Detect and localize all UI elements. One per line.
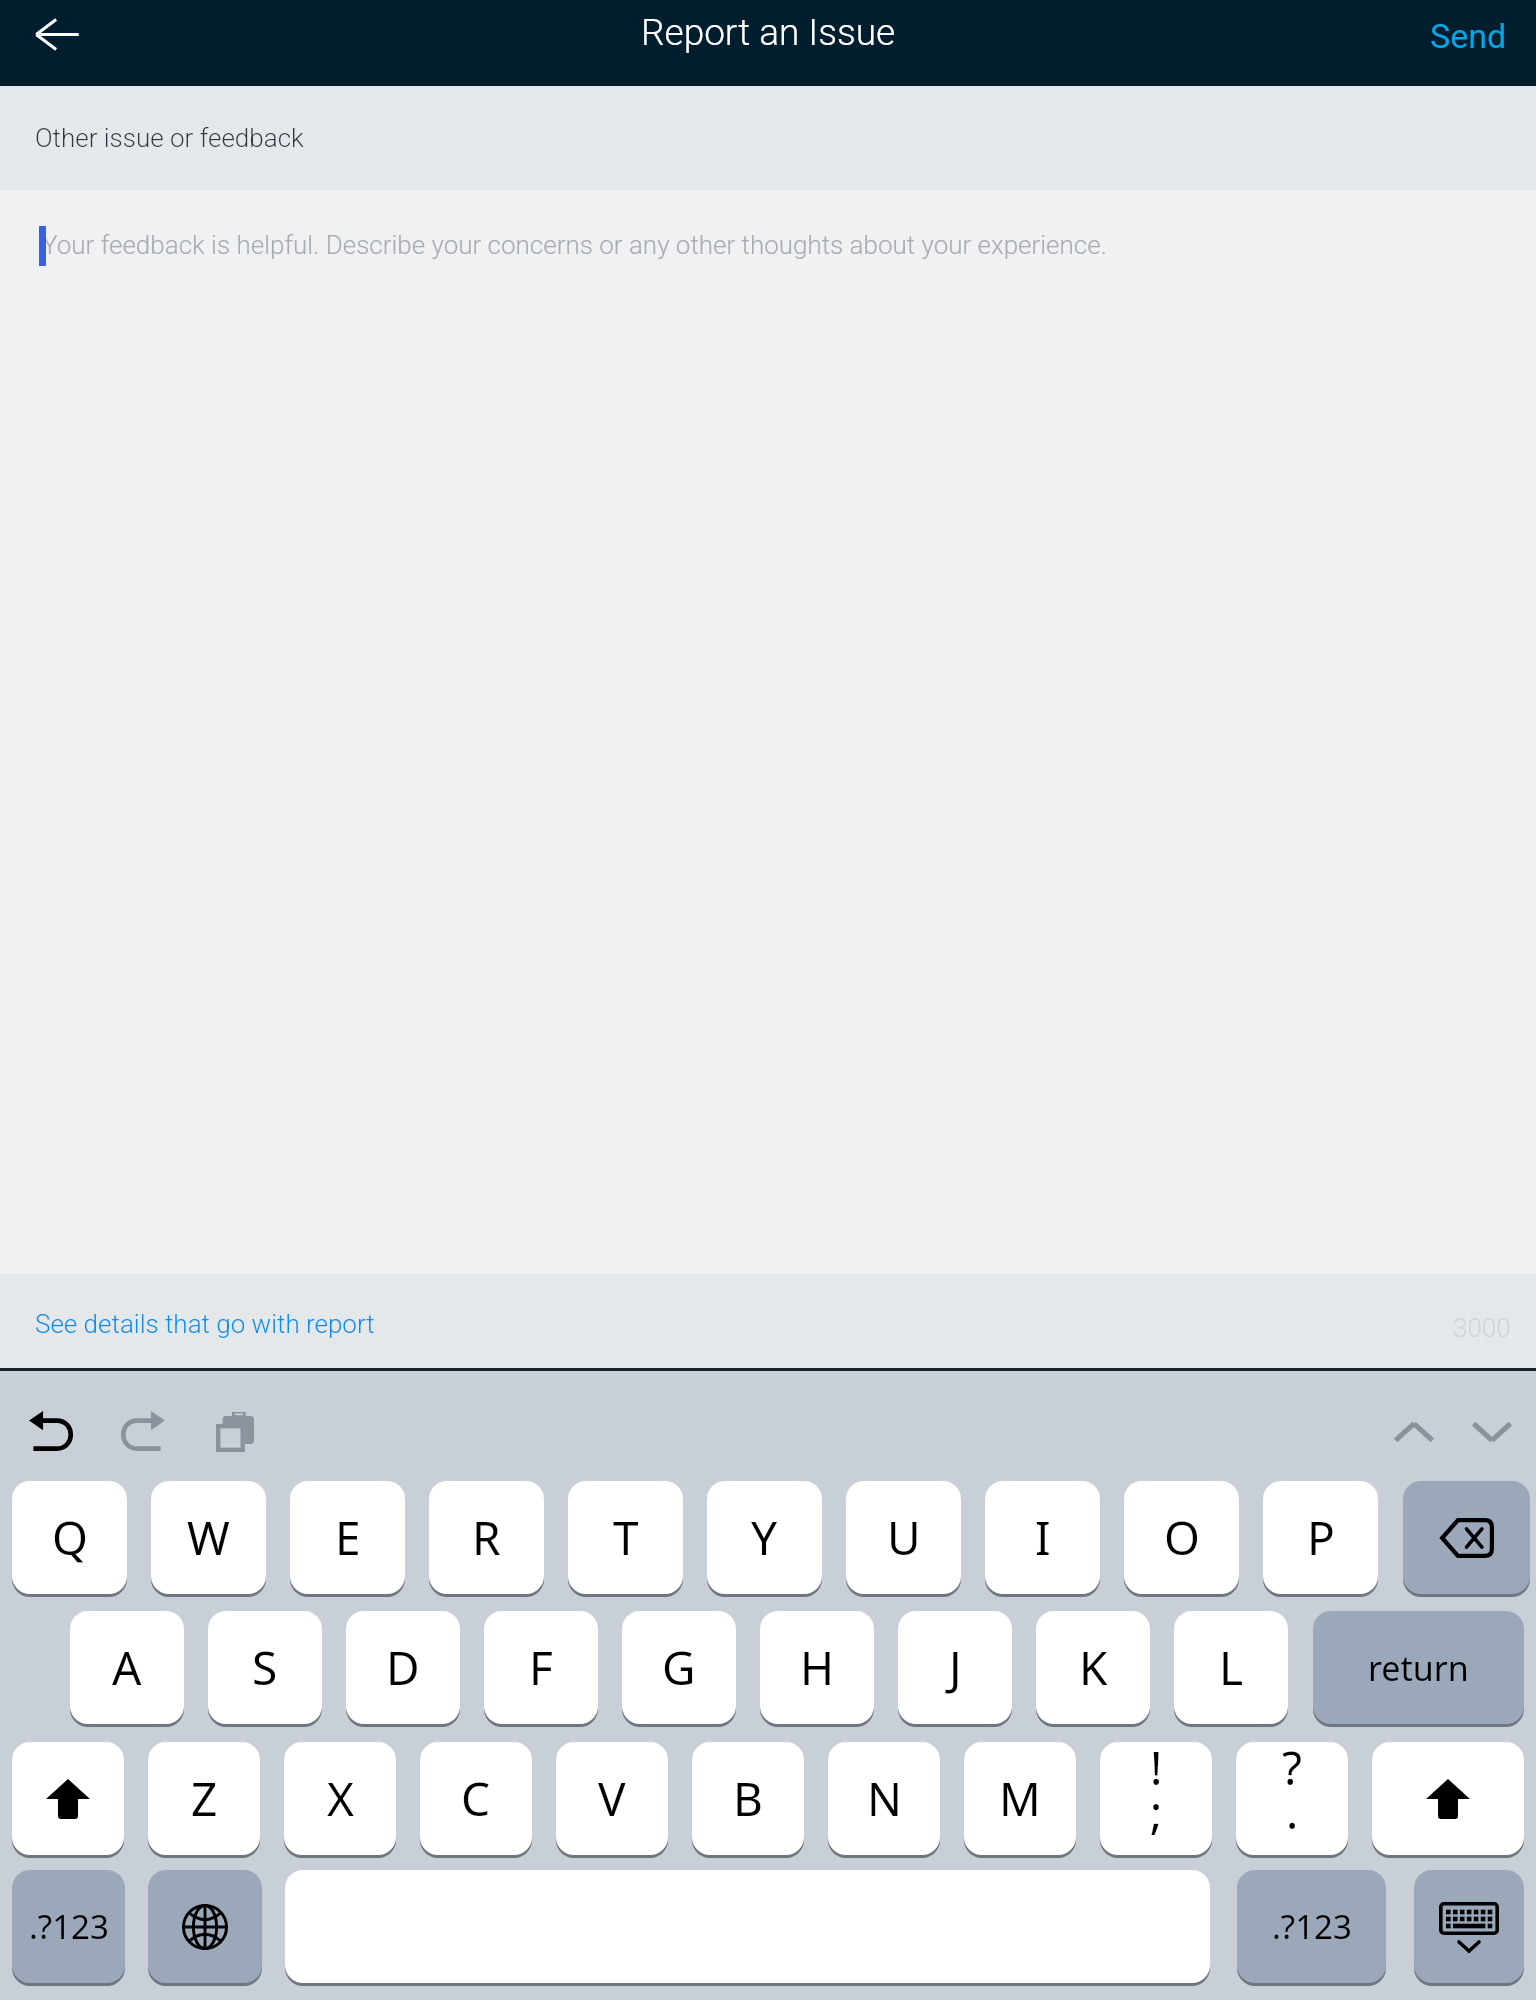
button[interactable]: H bbox=[760, 1611, 874, 1724]
button[interactable]: F bbox=[484, 1611, 598, 1724]
button[interactable]: E bbox=[290, 1481, 405, 1594]
staticText: N bbox=[867, 1767, 902, 1830]
button[interactable]: Undo bbox=[9, 1389, 93, 1473]
button[interactable]: G bbox=[622, 1611, 736, 1724]
button[interactable]: Change language bbox=[148, 1870, 262, 1983]
button[interactable]: K bbox=[1036, 1611, 1150, 1724]
button[interactable]: Redo bbox=[101, 1389, 185, 1473]
button[interactable]: Shift bbox=[1372, 1742, 1524, 1855]
staticText: W bbox=[187, 1506, 230, 1569]
button[interactable]: T bbox=[568, 1481, 683, 1594]
button[interactable]: C bbox=[420, 1742, 532, 1855]
button[interactable]: .?123 bbox=[1237, 1870, 1386, 1983]
staticText: 3000 bbox=[1453, 1313, 1511, 1343]
button[interactable]: return bbox=[1313, 1611, 1524, 1724]
button[interactable]: S bbox=[208, 1611, 322, 1724]
button[interactable]: M bbox=[964, 1742, 1076, 1855]
button[interactable]: A bbox=[70, 1611, 184, 1724]
button[interactable]: Space bbox=[285, 1870, 1210, 1983]
staticText: C bbox=[461, 1767, 491, 1830]
button[interactable]: Shift bbox=[12, 1742, 124, 1855]
button[interactable]: U bbox=[846, 1481, 961, 1594]
staticText: L bbox=[1219, 1636, 1244, 1699]
button[interactable]: ? bbox=[1236, 1742, 1348, 1855]
staticText: X bbox=[327, 1767, 354, 1830]
button[interactable]: Previous field bbox=[1372, 1390, 1456, 1474]
button[interactable]: See details that go with report bbox=[0, 1274, 395, 1368]
staticText: R bbox=[472, 1506, 501, 1569]
staticText: S bbox=[252, 1636, 278, 1699]
staticText: ? bbox=[1282, 1742, 1302, 1799]
staticText: P bbox=[1307, 1506, 1335, 1569]
staticText: O bbox=[1164, 1506, 1200, 1569]
staticText: K bbox=[1079, 1636, 1108, 1699]
button[interactable]: X bbox=[284, 1742, 396, 1855]
button[interactable]: V bbox=[556, 1742, 668, 1855]
staticText: Y bbox=[751, 1506, 778, 1569]
staticText: Other issue or feedback bbox=[35, 123, 304, 153]
staticText: . bbox=[1286, 1780, 1299, 1843]
button[interactable]: R bbox=[429, 1481, 544, 1594]
button[interactable]: Other issue or feedback bbox=[0, 86, 1536, 190]
staticText: E bbox=[335, 1506, 361, 1569]
button[interactable]: Send bbox=[1390, 3, 1536, 69]
staticText: T bbox=[613, 1506, 639, 1569]
button[interactable]: Q bbox=[12, 1481, 127, 1594]
button[interactable]: Hide keyboard bbox=[1414, 1870, 1524, 1983]
button[interactable]: P bbox=[1263, 1481, 1378, 1594]
button[interactable]: ! bbox=[1100, 1742, 1212, 1855]
staticText: F bbox=[529, 1636, 553, 1699]
staticText: G bbox=[662, 1636, 696, 1699]
staticText: I bbox=[1035, 1506, 1051, 1569]
button[interactable]: Describe your issue bbox=[0, 190, 1536, 1274]
button[interactable]: D bbox=[346, 1611, 460, 1724]
staticText: return bbox=[1368, 1645, 1469, 1691]
button[interactable]: Next field bbox=[1450, 1390, 1534, 1474]
staticText: M bbox=[999, 1767, 1041, 1830]
button[interactable]: N bbox=[828, 1742, 940, 1855]
staticText: V bbox=[598, 1767, 626, 1830]
staticText: B bbox=[733, 1767, 763, 1830]
button[interactable]: Paste bbox=[193, 1390, 277, 1474]
button[interactable]: O bbox=[1124, 1481, 1239, 1594]
staticText: D bbox=[386, 1636, 420, 1699]
staticText: H bbox=[800, 1636, 835, 1699]
button[interactable]: I bbox=[985, 1481, 1100, 1594]
button[interactable]: W bbox=[151, 1481, 266, 1594]
staticText: A bbox=[112, 1636, 142, 1699]
staticText: Send bbox=[1430, 16, 1507, 56]
staticText: See details that go with report bbox=[35, 1309, 375, 1339]
staticText: J bbox=[949, 1636, 962, 1699]
staticText: ; bbox=[1150, 1780, 1163, 1843]
staticText: Q bbox=[52, 1506, 88, 1569]
button[interactable]: .?123 bbox=[12, 1870, 125, 1983]
button[interactable]: L bbox=[1174, 1611, 1288, 1724]
button[interactable]: J bbox=[898, 1611, 1012, 1724]
button[interactable]: B bbox=[692, 1742, 804, 1855]
staticText: ! bbox=[1150, 1742, 1163, 1799]
staticText: Z bbox=[191, 1767, 218, 1830]
button[interactable]: Backspace bbox=[1403, 1481, 1530, 1594]
button[interactable]: Y bbox=[707, 1481, 822, 1594]
staticText: .?123 bbox=[29, 1904, 109, 1949]
staticText: U bbox=[887, 1506, 921, 1569]
staticText: Your feedback is helpful. Describe your … bbox=[42, 230, 1107, 260]
staticText: .?123 bbox=[1272, 1904, 1352, 1949]
button[interactable]: Z bbox=[148, 1742, 260, 1855]
button[interactable]: Back bbox=[0, 0, 114, 66]
staticText: Report an Issue bbox=[641, 11, 896, 54]
